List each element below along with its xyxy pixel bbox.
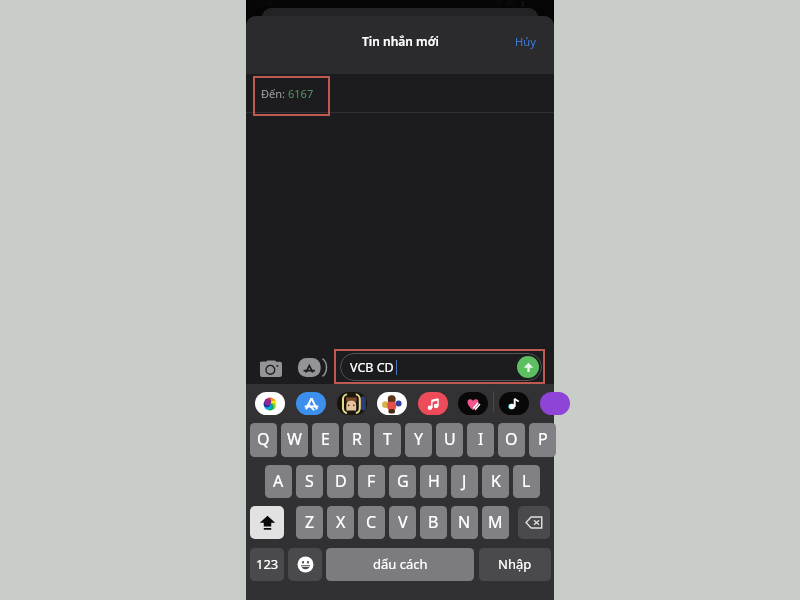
button[interactable]: dấu cách: [326, 548, 474, 581]
staticText: P: [538, 428, 548, 450]
button[interactable]: Z: [296, 506, 323, 539]
button[interactable]: Hủy: [505, 29, 546, 54]
button[interactable]: J: [451, 465, 478, 498]
button[interactable]: N: [451, 506, 478, 539]
staticText: I: [478, 428, 484, 450]
button[interactable]: TikTok: [499, 392, 529, 415]
staticText: Z: [305, 511, 315, 533]
button[interactable]: Fitness: [458, 392, 488, 415]
button[interactable]: Music: [418, 392, 448, 415]
button[interactable]: G: [389, 465, 416, 498]
staticText: V: [398, 511, 408, 533]
staticText: X: [336, 511, 346, 533]
button[interactable]: A: [265, 465, 292, 498]
button[interactable]: Send: [517, 356, 539, 378]
staticText: 123: [256, 555, 279, 573]
button[interactable]: Emoji keyboard: [288, 548, 322, 581]
staticText: L: [522, 470, 531, 492]
staticText: Q: [257, 428, 270, 450]
button[interactable]: F: [358, 465, 385, 498]
staticText: Hủy: [515, 34, 536, 49]
button[interactable]: Nhập: [479, 548, 551, 581]
button[interactable]: Q: [250, 423, 277, 457]
button[interactable]: C: [358, 506, 385, 539]
button[interactable]: 123: [250, 548, 284, 581]
button[interactable]: Camera: [260, 360, 282, 377]
staticText: W: [287, 428, 302, 450]
button[interactable]: More: [540, 392, 570, 415]
button[interactable]: K: [482, 465, 509, 498]
button[interactable]: V: [389, 506, 416, 539]
staticText: Đến:: [261, 86, 288, 101]
button[interactable]: U: [436, 423, 463, 457]
button[interactable]: Đến:: [261, 74, 314, 112]
staticText: R: [352, 428, 362, 450]
button[interactable]: M: [482, 506, 509, 539]
button[interactable]: B: [420, 506, 447, 539]
button[interactable]: H: [420, 465, 447, 498]
staticText: B: [428, 511, 439, 533]
button[interactable]: App Store: [296, 392, 326, 415]
button[interactable]: Photos: [255, 392, 285, 415]
button[interactable]: E: [312, 423, 339, 457]
button[interactable]: Y: [405, 423, 432, 457]
staticText: G: [397, 470, 409, 492]
button[interactable]: S: [296, 465, 323, 498]
staticText: D: [335, 470, 347, 492]
staticText: Tin nhắn mới: [362, 33, 439, 49]
button[interactable]: VCB CD: [340, 353, 542, 381]
staticText: T: [383, 428, 392, 450]
staticText: 6167: [288, 86, 314, 101]
button[interactable]: R: [343, 423, 370, 457]
staticText: dấu cách: [373, 555, 428, 573]
button[interactable]: P: [529, 423, 556, 457]
staticText: O: [505, 428, 518, 450]
staticText: H: [428, 470, 440, 492]
staticText: J: [462, 470, 467, 492]
staticText: S: [305, 470, 314, 492]
button[interactable]: I: [467, 423, 494, 457]
staticText: Y: [414, 428, 424, 450]
staticText: Nhập: [498, 555, 532, 573]
staticText: K: [491, 470, 501, 492]
staticText: A: [273, 470, 284, 492]
button[interactable]: T: [374, 423, 401, 457]
button[interactable]: O: [498, 423, 525, 457]
button[interactable]: Memoji: [337, 392, 367, 415]
button[interactable]: X: [327, 506, 354, 539]
button[interactable]: Memoji 2: [377, 392, 407, 415]
button[interactable]: App Store: [298, 358, 324, 377]
staticText: N: [458, 511, 471, 533]
staticText: E: [321, 428, 330, 450]
staticText: ..ıll 4G ▮: [491, 0, 525, 8]
staticText: F: [367, 470, 376, 492]
button[interactable]: L: [513, 465, 540, 498]
button[interactable]: Shift: [250, 506, 284, 539]
staticText: C: [366, 511, 377, 533]
staticText: M: [488, 511, 503, 533]
button[interactable]: D: [327, 465, 354, 498]
staticText: U: [444, 428, 456, 450]
button[interactable]: Delete: [518, 506, 550, 539]
staticText: VCB CD: [350, 359, 394, 376]
button[interactable]: W: [281, 423, 308, 457]
